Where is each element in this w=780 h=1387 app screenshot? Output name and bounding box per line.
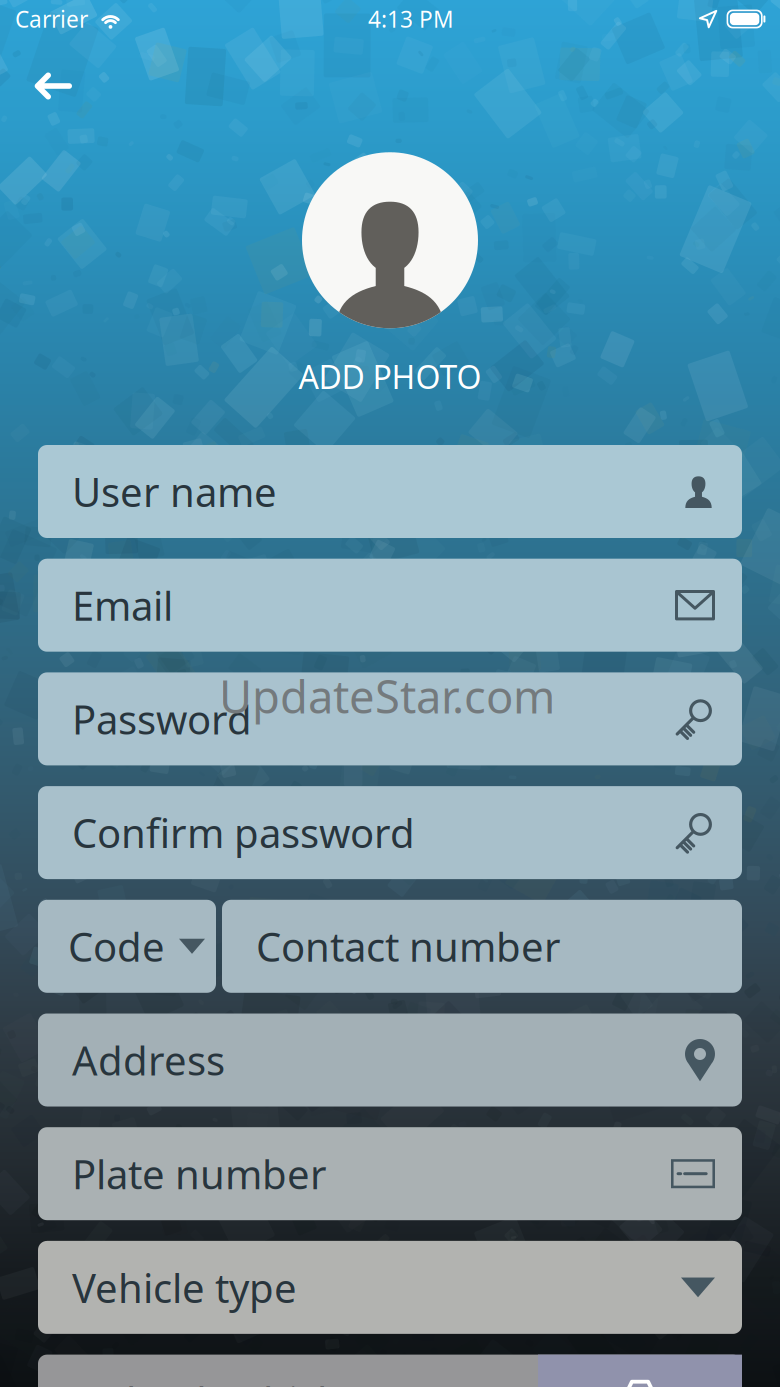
staticText: Address — [72, 1033, 225, 1086]
button[interactable]: Confirm password — [38, 786, 742, 879]
button[interactable]: Plate number — [38, 1127, 742, 1220]
button[interactable]: Code — [38, 900, 216, 993]
button[interactable]: User name — [38, 445, 742, 538]
button[interactable]: Address — [38, 1013, 742, 1106]
staticText: 4:13 PM — [368, 4, 454, 34]
button[interactable]: Add photo — [302, 152, 478, 328]
staticText: Email — [72, 579, 173, 632]
button[interactable]: Email — [38, 559, 742, 652]
button[interactable]: Vehicle type — [38, 1241, 742, 1334]
staticText: User name — [72, 465, 277, 518]
staticText: Vehicle type — [72, 1261, 297, 1314]
staticText: ADD PHOTO — [298, 355, 481, 398]
staticText: Confirm password — [72, 806, 415, 859]
button[interactable]: Contact number — [222, 900, 742, 993]
staticText: Contact number — [256, 920, 561, 973]
staticText: Carrier — [15, 4, 88, 34]
button[interactable]: Back — [13, 53, 93, 119]
staticText: Code — [68, 920, 165, 973]
button[interactable]: ADD PHOTO — [282, 328, 497, 398]
button[interactable]: Upload Vehicle Image — [38, 1355, 742, 1387]
staticText: Password — [72, 692, 252, 745]
button[interactable]: Password — [38, 672, 742, 765]
staticText: UpdateStar.com — [219, 666, 555, 726]
staticText: Plate number — [72, 1147, 327, 1200]
